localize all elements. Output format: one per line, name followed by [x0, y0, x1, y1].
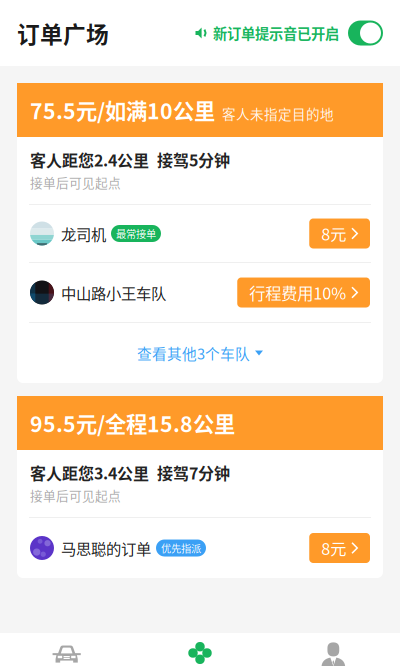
staticText: 新订单提示音已开启 — [213, 23, 339, 43]
staticText: 客人未指定目的地 — [222, 104, 334, 123]
button[interactable]: 查看其他3个车队 — [17, 323, 383, 383]
staticText: 客人距您2.4公里 接驾5分钟 — [30, 148, 230, 171]
staticText: 龙司机 — [61, 222, 106, 245]
staticText: 8元 — [321, 222, 346, 245]
button[interactable]: 中山路小王车队 — [17, 263, 383, 322]
button[interactable]: 马思聪的订单 — [17, 518, 383, 578]
staticText: 马思聪的订单 — [61, 537, 151, 559]
staticText: 最常接单 — [116, 226, 156, 241]
staticText: 订单广场 — [17, 17, 109, 49]
button[interactable]: 新订单提示音开关 — [348, 20, 383, 45]
staticText: 75.5元/如满10公里 — [30, 95, 215, 125]
staticText: 客人距您3.4公里 接驾7分钟 — [30, 461, 230, 484]
button[interactable]: 新订单提示音已开启 — [195, 23, 339, 43]
staticText: 8元 — [321, 536, 346, 560]
staticText: 行程费用10% — [249, 281, 346, 304]
button[interactable]: 我的 — [267, 633, 400, 666]
button[interactable]: 龙司机 — [17, 205, 383, 262]
staticText: 查看其他3个车队 — [137, 342, 250, 364]
staticText: 95.5元/全程15.8公里 — [30, 408, 235, 438]
staticText: 中山路小王车队 — [61, 281, 166, 304]
staticText: 接单后可见起点 — [30, 173, 121, 191]
staticText: 接单后可见起点 — [30, 486, 121, 504]
button[interactable]: 订单广场 — [133, 633, 267, 666]
staticText: 优先指派 — [161, 541, 201, 555]
button[interactable]: 接单 — [0, 633, 133, 666]
